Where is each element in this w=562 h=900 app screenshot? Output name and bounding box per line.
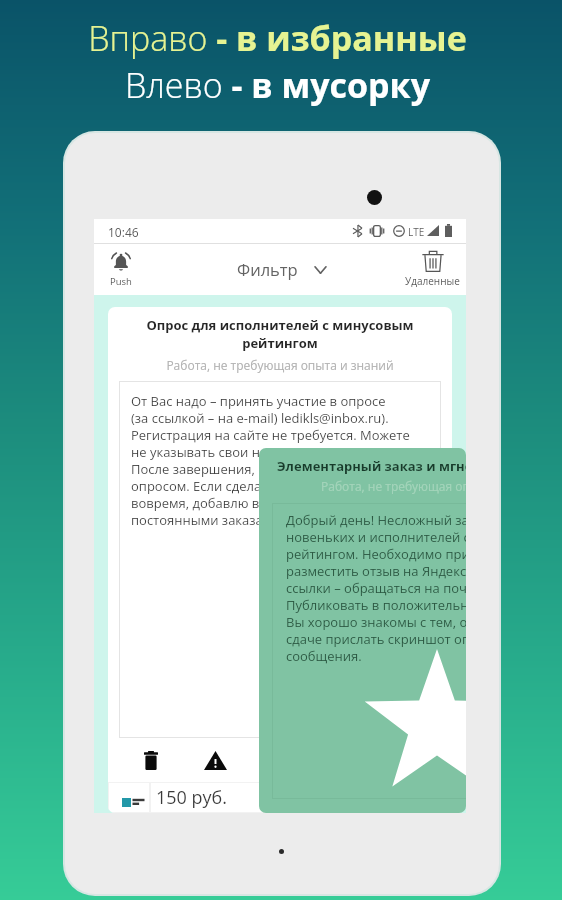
- button[interactable]: Удаленные: [399, 244, 466, 295]
- staticText: Добрый день! Несложный заказ для новеньк…: [286, 511, 466, 665]
- button[interactable]: Пожаловаться: [197, 742, 233, 778]
- staticText: Работа, не требующая опыта и знаний: [321, 478, 466, 494]
- button[interactable]: Опрос для исполнителей с минусовым рейти…: [108, 307, 452, 813]
- button[interactable]: Push: [94, 244, 148, 295]
- staticText: Удаленные: [405, 274, 460, 288]
- staticText: Работа, не требующая опыта и знаний: [108, 357, 452, 373]
- staticText: 10:46: [108, 224, 139, 240]
- staticText: Фильтр: [237, 258, 298, 280]
- button[interactable]: Элементарный заказ и мгновенная оплата: [259, 448, 466, 813]
- staticText: Push: [110, 275, 132, 288]
- staticText: Опрос для исполнителей с минусовым рейти…: [144, 316, 416, 352]
- staticText: От Вас надо – принять участие в опросе (…: [131, 392, 410, 529]
- staticText: Элементарный заказ и мгновенная оплата: [277, 457, 466, 475]
- staticText: 150 руб.: [156, 785, 228, 810]
- button[interactable]: Фильтр: [231, 244, 333, 295]
- staticText: Вправо - в избранные Влево - в мусорку: [88, 15, 467, 108]
- button[interactable]: Удалить: [133, 742, 169, 778]
- staticText: LTE: [408, 225, 425, 239]
